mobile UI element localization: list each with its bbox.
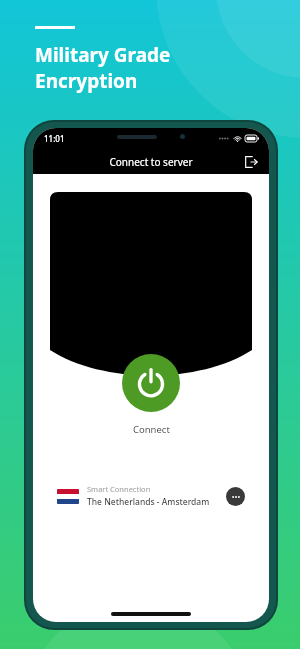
- staticText: 11:01: [44, 133, 65, 144]
- button[interactable]: Connect: [122, 354, 180, 412]
- staticText: Encryption: [35, 68, 138, 94]
- button[interactable]: Log out: [241, 152, 261, 172]
- staticText: Military Grade: [35, 42, 171, 68]
- staticText: The Netherlands - Amsterdam: [87, 496, 210, 508]
- staticText: Connect to server: [109, 155, 193, 169]
- staticText: Smart Connection: [87, 484, 151, 494]
- button[interactable]: More options: [226, 487, 245, 506]
- staticText: Connect: [133, 423, 170, 436]
- button[interactable]: Smart Connection: [49, 474, 253, 518]
